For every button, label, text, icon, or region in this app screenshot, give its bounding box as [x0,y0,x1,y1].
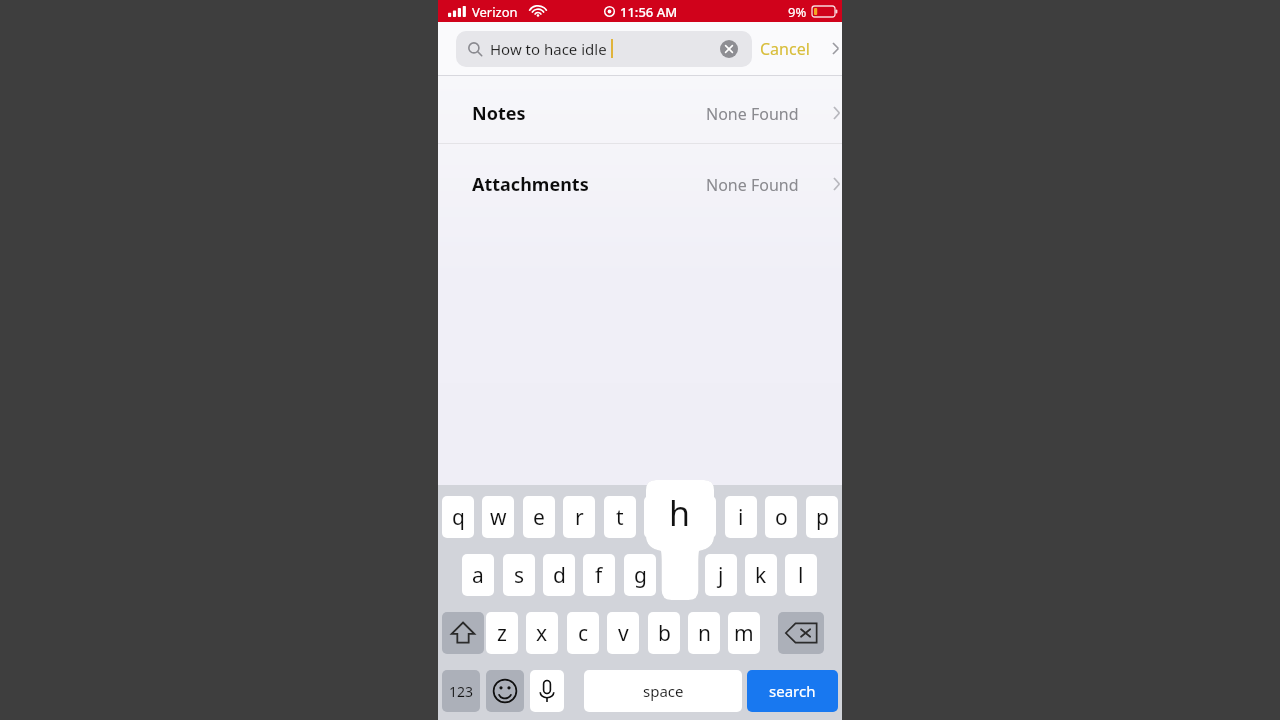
button[interactable]: v [607,612,639,654]
staticText: v [618,619,629,648]
button[interactable]: c [567,612,599,654]
button[interactable]: m [728,612,760,654]
staticText: i [738,503,744,532]
button[interactable]: j [705,554,737,596]
button[interactable]: p [806,496,838,538]
staticText: search [769,681,816,701]
button[interactable]: i [725,496,757,538]
button[interactable]: h key pressed [646,480,714,600]
button[interactable]: l [785,554,817,596]
staticText: Cancel [760,38,810,60]
staticText: space [643,681,684,701]
staticText: c [578,619,589,648]
button[interactable]: x [526,612,558,654]
staticText: a [472,561,484,590]
button[interactable]: n [688,612,720,654]
button[interactable]: k [745,554,777,596]
button[interactable]: Emoji [486,670,524,712]
staticText: j [718,561,724,590]
staticText: z [497,619,507,648]
staticText: m [734,619,754,648]
staticText: o [775,503,788,532]
staticText: 11:56 AM [620,3,678,21]
button[interactable]: How to hace idle [456,31,752,67]
button[interactable]: space [584,670,742,712]
staticText: d [553,561,566,590]
button[interactable]: o [765,496,797,538]
staticText: p [816,503,829,532]
staticText: None Found [706,103,799,125]
button[interactable]: b [648,612,680,654]
staticText: l [798,561,804,590]
staticText: g [634,561,647,590]
button[interactable]: search [747,670,838,712]
staticText: t [616,503,624,532]
button[interactable]: Shift [442,612,484,654]
staticText: b [658,619,671,648]
staticText: Verizon [472,3,518,21]
staticText: How to hace idle [490,39,607,59]
button[interactable]: r [563,496,595,538]
staticText: 9% [788,3,807,21]
button[interactable]: z [486,612,518,654]
staticText: Notes [472,101,526,126]
button[interactable]: Attachments [438,161,842,211]
button[interactable]: u [684,496,716,538]
button[interactable]: Notes [438,90,842,140]
button[interactable]: Cancel [760,31,826,67]
button[interactable]: w [482,496,514,538]
staticText: h [669,490,691,536]
button[interactable]: g [624,554,656,596]
staticText: n [698,619,711,648]
staticText: r [575,503,584,532]
button[interactable]: Dictate [530,670,564,712]
staticText: q [452,503,465,532]
button[interactable]: a [462,554,494,596]
staticText: k [755,561,767,590]
staticText: None Found [706,174,799,196]
button[interactable]: Backspace [778,612,824,654]
staticText: s [514,561,525,590]
staticText: e [533,503,545,532]
staticText: x [536,619,548,648]
staticText: w [490,503,507,532]
button[interactable]: y [644,496,676,538]
button[interactable]: s [503,554,535,596]
button[interactable]: 123 [442,670,480,712]
button[interactable]: d [543,554,575,596]
staticText: f [595,561,603,590]
button[interactable]: Clear text [720,40,738,58]
button[interactable]: e [523,496,555,538]
staticText: 123 [449,682,474,701]
button[interactable]: f [583,554,615,596]
staticText: Attachments [472,172,589,197]
button[interactable]: q [442,496,474,538]
button[interactable]: t [604,496,636,538]
